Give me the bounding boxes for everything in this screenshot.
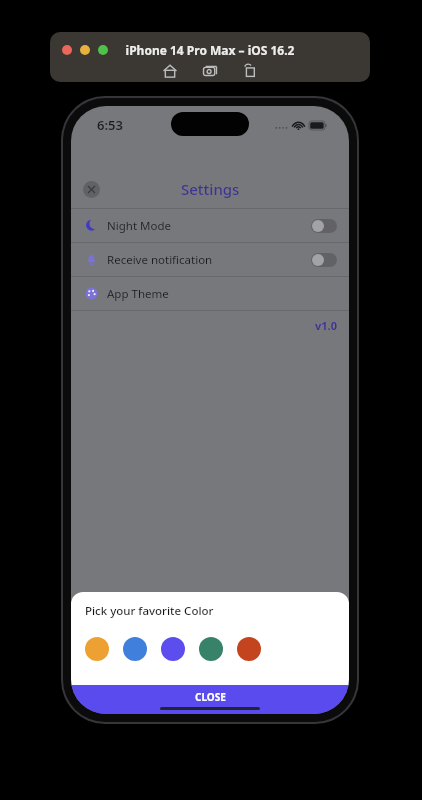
staticText: CLOSE (195, 690, 226, 704)
button[interactable]: Red color (237, 637, 261, 661)
button[interactable]: Green color (199, 637, 223, 661)
button[interactable]: Indigo color (161, 637, 185, 661)
button[interactable]: Close (83, 181, 100, 198)
button[interactable]: Maximize window (98, 45, 108, 55)
button[interactable]: Home (161, 62, 179, 80)
staticText: Receive notification (107, 252, 213, 268)
button[interactable]: Rotate (241, 62, 259, 80)
staticText: 6:53 (97, 116, 123, 134)
button[interactable]: App Theme (71, 277, 349, 310)
button[interactable]: Blue color (123, 637, 147, 661)
staticText: iPhone 14 Pro Max – iOS 16.2 (50, 42, 370, 58)
staticText: Settings (181, 179, 240, 199)
button[interactable]: Receive notification toggle (311, 253, 337, 267)
button[interactable]: Orange color (85, 637, 109, 661)
button[interactable]: Receive notification (71, 243, 349, 276)
staticText: App Theme (107, 286, 169, 302)
button[interactable]: CLOSE (71, 685, 349, 714)
button[interactable]: Close window (62, 45, 72, 55)
staticText: Pick your favorite Color (85, 603, 214, 619)
staticText: Night Mode (107, 218, 171, 234)
button[interactable]: Minimize window (80, 45, 90, 55)
staticText: v1.0 (315, 318, 337, 333)
button[interactable]: Night Mode (71, 209, 349, 242)
button[interactable]: Night Mode toggle (311, 219, 337, 233)
button[interactable]: Screenshot (201, 62, 219, 80)
